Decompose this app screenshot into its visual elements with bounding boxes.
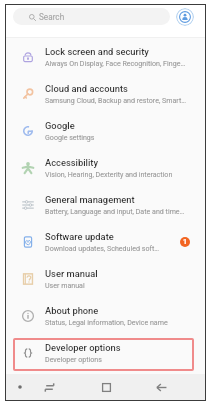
staticText: Google bbox=[45, 120, 75, 131]
staticText: Samsung Cloud, Backup and restore, Smart… bbox=[45, 96, 187, 104]
staticText: Google settings bbox=[45, 133, 95, 141]
button[interactable]: About phone bbox=[6, 297, 205, 334]
button[interactable]: Cloud and accounts bbox=[6, 75, 205, 112]
staticText: Developer options bbox=[45, 342, 121, 353]
button[interactable]: Menu bbox=[6, 374, 34, 400]
staticText: Developer options bbox=[45, 355, 102, 363]
staticText: User manual bbox=[45, 268, 98, 279]
button[interactable]: Account bbox=[176, 8, 194, 26]
staticText: 1 bbox=[183, 238, 188, 246]
staticText: Accessibility bbox=[45, 157, 99, 168]
button[interactable]: User manual bbox=[6, 260, 205, 297]
button[interactable]: Google bbox=[6, 112, 205, 149]
staticText: Lock screen and security bbox=[45, 46, 149, 57]
staticText: Status, Legal information, Device name bbox=[45, 318, 168, 326]
staticText: About phone bbox=[45, 305, 99, 316]
staticText: Search bbox=[39, 12, 65, 22]
button[interactable]: Developer options bbox=[6, 334, 205, 371]
staticText: Download updates, Scheduled soft… bbox=[45, 244, 159, 252]
staticText: Software update bbox=[45, 231, 114, 242]
button[interactable]: Search bbox=[13, 8, 170, 25]
staticText: Battery, Language and input, Date and ti… bbox=[45, 207, 185, 215]
button[interactable]: Home bbox=[64, 374, 148, 400]
button[interactable]: Accessibility bbox=[6, 149, 205, 186]
staticText: General management bbox=[45, 194, 135, 205]
button[interactable]: Lock screen and security bbox=[6, 38, 205, 75]
button[interactable]: Back bbox=[148, 374, 174, 400]
staticText: User manual bbox=[45, 281, 85, 289]
button[interactable]: General management bbox=[6, 186, 205, 223]
button[interactable]: Software update bbox=[6, 223, 205, 260]
staticText: Cloud and accounts bbox=[45, 83, 128, 94]
staticText: Vision, Hearing, Dexterity and interacti… bbox=[45, 170, 173, 178]
button[interactable]: Recents bbox=[34, 374, 64, 400]
staticText: Always On Display, Face Recognition, Fin… bbox=[45, 59, 186, 67]
